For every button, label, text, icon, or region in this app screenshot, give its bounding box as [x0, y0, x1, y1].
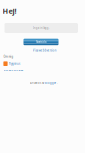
- button[interactable]: flygsnus: [3, 61, 20, 66]
- button[interactable]: Startsida: [23, 39, 58, 45]
- staticText: Inga inlägg.: [33, 26, 50, 30]
- staticText: Om mig: [3, 55, 13, 58]
- staticText: Visa hela min profil: [3, 69, 23, 72]
- staticText: Blogger: [45, 81, 56, 85]
- staticText: Hej!: [2, 6, 16, 16]
- staticText: Startsida: [36, 40, 46, 44]
- button[interactable]: Visa webbversion: [33, 49, 57, 52]
- staticText: Visa webbversion: [33, 49, 57, 52]
- button[interactable]: Visa hela min profil: [3, 69, 23, 72]
- staticText: .: [57, 81, 58, 85]
- staticText: Används av: [30, 81, 44, 85]
- staticText: flygsnus: [9, 62, 20, 65]
